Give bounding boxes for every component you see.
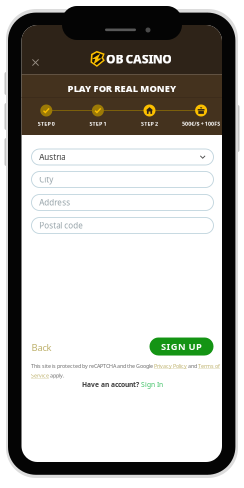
staticText: Austria bbox=[39, 152, 65, 162]
staticText: OB CASINO bbox=[106, 51, 172, 67]
staticText: Privacy Policy bbox=[154, 362, 187, 370]
button[interactable]: Close bbox=[29, 56, 42, 69]
staticText: apply. bbox=[49, 372, 64, 379]
button[interactable]: Privacy Policy bbox=[154, 362, 187, 370]
staticText: Back bbox=[31, 341, 51, 354]
staticText: City bbox=[39, 174, 53, 185]
staticText: STEP 1 bbox=[89, 120, 106, 127]
staticText: Postal code bbox=[39, 220, 83, 231]
staticText: STEP 0 bbox=[38, 120, 55, 127]
staticText: Terms of bbox=[198, 362, 220, 370]
staticText: Sign In bbox=[141, 380, 163, 389]
button[interactable]: Service bbox=[31, 372, 49, 379]
staticText: SIGN UP bbox=[161, 340, 202, 353]
button[interactable]: Back bbox=[31, 341, 75, 354]
staticText: Have an account? bbox=[82, 380, 139, 389]
staticText: Service bbox=[31, 372, 49, 379]
button[interactable]: Sign In bbox=[141, 380, 163, 389]
button[interactable]: SIGN UP bbox=[149, 337, 213, 355]
button[interactable]: City bbox=[31, 171, 213, 187]
staticText: This site is protected by reCAPTCHA and … bbox=[31, 362, 154, 370]
button[interactable]: Postal code bbox=[31, 217, 213, 233]
staticText: Address bbox=[39, 197, 70, 208]
button[interactable]: Austria bbox=[31, 149, 213, 165]
staticText: and bbox=[187, 362, 198, 370]
button[interactable]: Address bbox=[31, 194, 213, 210]
staticText: PLAY FOR REAL MONEY bbox=[67, 82, 176, 95]
staticText: STEP 2 bbox=[141, 120, 158, 127]
button[interactable]: Terms of bbox=[198, 362, 220, 370]
staticText: 500€/$ + 100FS bbox=[182, 120, 220, 127]
